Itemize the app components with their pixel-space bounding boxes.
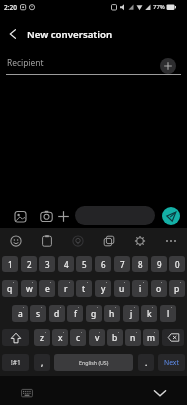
staticText: !#1	[11, 358, 21, 367]
button[interactable]: o	[151, 280, 167, 297]
button[interactable]: t	[76, 280, 92, 297]
button[interactable]: s	[30, 305, 46, 322]
button[interactable]: Next	[158, 354, 185, 371]
staticText: u	[119, 283, 125, 295]
button[interactable]: x	[52, 329, 68, 346]
button[interactable]: q	[2, 280, 18, 297]
button[interactable]: a	[12, 305, 28, 322]
button[interactable]	[2, 329, 29, 346]
button[interactable]	[71, 234, 85, 248]
staticText: j	[130, 308, 133, 320]
button[interactable]: English (US)	[54, 354, 133, 371]
button[interactable]	[162, 207, 180, 225]
button[interactable]: i	[132, 280, 148, 297]
button[interactable]: ,	[34, 354, 50, 371]
staticText: r	[64, 283, 68, 295]
staticText: New conversation	[27, 28, 113, 41]
staticText: w	[26, 283, 33, 295]
button[interactable]: k	[141, 305, 157, 322]
staticText: 3	[45, 259, 50, 270]
button[interactable]	[164, 234, 178, 248]
button[interactable]	[162, 329, 184, 346]
button[interactable]: 2	[21, 256, 37, 272]
staticText: x	[58, 332, 63, 344]
button[interactable]: 5	[76, 256, 92, 272]
staticText: 9	[157, 259, 162, 270]
button[interactable]: n	[125, 329, 141, 346]
staticText: y	[101, 283, 106, 295]
staticText: 0	[175, 259, 180, 270]
staticText: ,	[41, 357, 44, 369]
button[interactable]: 6	[95, 256, 111, 272]
button[interactable]: r	[58, 280, 74, 297]
staticText: p	[174, 283, 180, 295]
staticText: b	[112, 332, 118, 344]
staticText: Recipient	[7, 57, 44, 68]
staticText: Next	[164, 358, 179, 367]
button[interactable]: v	[89, 329, 105, 346]
button[interactable]	[21, 387, 33, 399]
button[interactable]: 8	[132, 256, 148, 272]
button[interactable]: d	[49, 305, 65, 322]
button[interactable]: c	[70, 329, 86, 346]
button[interactable]: 4	[58, 256, 74, 272]
button[interactable]: .	[138, 354, 154, 371]
button[interactable]	[152, 386, 168, 400]
staticText: z	[40, 332, 44, 344]
staticText: v	[95, 332, 100, 344]
staticText: 7	[120, 259, 125, 270]
button[interactable]: 3	[39, 256, 55, 272]
staticText: d	[54, 308, 60, 320]
button[interactable]	[160, 58, 176, 74]
staticText: 1	[8, 259, 13, 270]
button[interactable]	[6, 27, 20, 41]
staticText: 5	[82, 259, 87, 270]
button[interactable]: e	[39, 280, 55, 297]
button[interactable]	[102, 234, 116, 248]
button[interactable]	[40, 210, 53, 223]
staticText: g	[91, 308, 97, 320]
staticText: a	[18, 308, 23, 320]
button[interactable]	[57, 210, 70, 223]
button[interactable]	[9, 234, 23, 248]
staticText: i	[139, 283, 142, 295]
button[interactable]: z	[34, 329, 50, 346]
staticText: 2	[27, 259, 32, 270]
staticText: o	[156, 283, 162, 295]
button[interactable]: 1	[2, 256, 18, 272]
staticText: English (US)	[79, 359, 109, 366]
button[interactable]: b	[107, 329, 123, 346]
button[interactable]: !#1	[2, 354, 29, 371]
staticText: .	[145, 357, 148, 369]
button[interactable]: u	[114, 280, 130, 297]
staticText: t	[82, 283, 86, 295]
staticText: e	[45, 283, 50, 295]
staticText: q	[7, 283, 13, 295]
button[interactable]: h	[104, 305, 120, 322]
staticText: c	[76, 332, 81, 344]
button[interactable]	[40, 234, 54, 248]
button[interactable]: m	[143, 329, 159, 346]
button[interactable]	[75, 206, 155, 225]
staticText: n	[130, 332, 136, 344]
staticText: 8	[138, 259, 143, 270]
staticText: 77%	[153, 3, 165, 11]
button[interactable]: 7	[114, 256, 130, 272]
button[interactable]: l	[160, 305, 176, 322]
staticText: f	[74, 308, 77, 320]
staticText: 4	[64, 259, 69, 270]
button[interactable]: p	[169, 280, 185, 297]
staticText: m	[147, 332, 155, 344]
staticText: s	[36, 308, 41, 320]
button[interactable]: w	[21, 280, 37, 297]
staticText: h	[109, 308, 115, 320]
button[interactable]: 0	[169, 256, 185, 272]
button[interactable]	[14, 210, 27, 223]
button[interactable]: 9	[151, 256, 167, 272]
button[interactable]	[133, 234, 147, 248]
button[interactable]: y	[95, 280, 111, 297]
button[interactable]: f	[67, 305, 83, 322]
button[interactable]: g	[86, 305, 102, 322]
button[interactable]: j	[123, 305, 139, 322]
staticText: 6	[101, 259, 106, 270]
